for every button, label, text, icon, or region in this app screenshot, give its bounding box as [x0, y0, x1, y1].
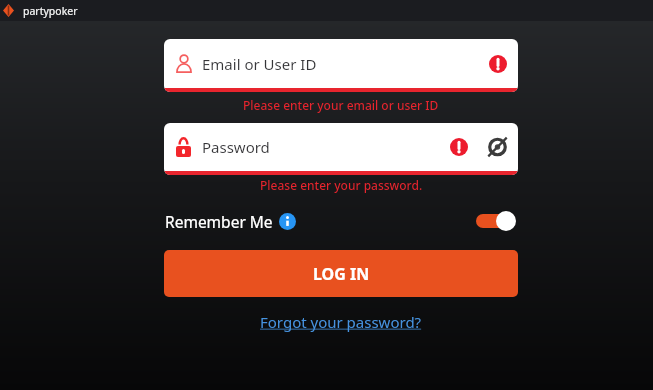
- staticText: Please enter your email or user ID: [243, 97, 439, 113]
- staticText: Please enter your password.: [260, 177, 423, 193]
- staticText: Remember Me: [165, 211, 273, 232]
- button[interactable]: Forgot your password?: [260, 312, 422, 332]
- staticText: Email or User ID: [202, 54, 317, 74]
- button[interactable]: Password: [164, 123, 518, 175]
- staticText: LOG IN: [313, 263, 370, 285]
- button[interactable]: [476, 210, 516, 232]
- button[interactable]: partypoker: [0, 0, 653, 21]
- staticText: partypoker: [23, 4, 78, 18]
- button[interactable]: Email or User ID: [164, 39, 518, 92]
- button[interactable]: LOG IN: [164, 250, 518, 297]
- staticText: Password: [202, 137, 270, 157]
- button[interactable]: [279, 213, 296, 230]
